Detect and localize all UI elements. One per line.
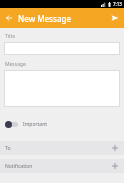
button[interactable]: Send	[108, 11, 122, 25]
staticText: Notification	[5, 163, 111, 170]
staticText: 7:13	[113, 1, 122, 7]
staticText: Title	[5, 33, 15, 40]
staticText: To	[5, 145, 111, 152]
button[interactable]: Back	[2, 11, 16, 25]
button[interactable]: Important	[0, 117, 124, 131]
button[interactable]: To	[0, 141, 124, 155]
button[interactable]	[4, 70, 120, 107]
staticText: New Message	[18, 13, 72, 24]
staticText: Important	[23, 121, 48, 128]
staticText: Message	[5, 61, 26, 68]
button[interactable]: Notification	[0, 159, 124, 173]
button[interactable]	[4, 42, 120, 55]
